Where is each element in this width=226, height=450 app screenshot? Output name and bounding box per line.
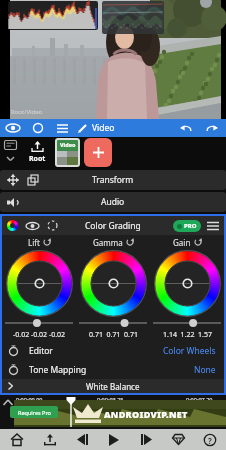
button[interactable] bbox=[76, 249, 150, 317]
button[interactable]: Editor bbox=[2, 341, 224, 360]
button[interactable] bbox=[66, 429, 98, 450]
button[interactable]: ? bbox=[194, 429, 226, 450]
staticText: -0.02 -0.02 -0.02 bbox=[13, 330, 66, 340]
staticText: PRO bbox=[184, 222, 197, 230]
staticText: ? bbox=[208, 435, 212, 446]
button[interactable]: Video bbox=[55, 138, 80, 167]
staticText: Root bbox=[29, 154, 46, 164]
button[interactable] bbox=[26, 119, 50, 137]
staticText: Tone Mapping bbox=[29, 364, 87, 376]
staticText: Color Grading bbox=[85, 220, 141, 232]
staticText: 0:00:03.25 bbox=[97, 396, 124, 403]
button[interactable]: Tone Mapping bbox=[2, 360, 224, 379]
staticText: White Balance bbox=[86, 381, 140, 392]
staticText: 0:00:00.00 bbox=[16, 396, 43, 403]
button[interactable] bbox=[2, 249, 76, 317]
button[interactable]: Requires Pro bbox=[10, 406, 58, 418]
button[interactable] bbox=[130, 429, 162, 450]
button[interactable]: Transform bbox=[0, 170, 226, 190]
button[interactable]: PRO bbox=[173, 220, 201, 232]
staticText: Gamma bbox=[93, 237, 123, 248]
staticText: Video bbox=[92, 122, 115, 134]
staticText: Video bbox=[60, 141, 76, 148]
button[interactable]: Video bbox=[74, 119, 119, 137]
button[interactable] bbox=[198, 119, 226, 137]
button[interactable] bbox=[84, 138, 112, 167]
button[interactable]: White Balance bbox=[2, 379, 224, 393]
button[interactable]: Root bbox=[22, 138, 52, 167]
button[interactable] bbox=[162, 429, 194, 450]
staticText: 0:00:07.20 bbox=[186, 396, 213, 403]
button[interactable] bbox=[50, 119, 74, 137]
button[interactable] bbox=[33, 429, 66, 450]
button[interactable]: Audio bbox=[0, 192, 226, 212]
button[interactable] bbox=[98, 429, 130, 450]
button[interactable] bbox=[172, 119, 198, 137]
staticText: 1.14 1.22 1.57 bbox=[163, 330, 212, 340]
staticText: Root/Video bbox=[11, 108, 43, 116]
staticText: Requires Pro bbox=[18, 409, 51, 416]
button[interactable] bbox=[0, 429, 33, 450]
staticText: Editor bbox=[29, 345, 53, 357]
staticText: ANDROIDVIP.NET bbox=[104, 408, 188, 420]
staticText: 0.71 0.71 0.71 bbox=[89, 330, 138, 340]
staticText: None bbox=[194, 364, 216, 376]
staticText: Gain bbox=[173, 237, 191, 248]
staticText: Audio bbox=[101, 196, 125, 208]
button[interactable]: Color Grading bbox=[2, 216, 224, 235]
staticText: Color Wheels bbox=[163, 345, 216, 357]
button[interactable] bbox=[150, 249, 224, 317]
staticText: Transform bbox=[92, 174, 134, 186]
button[interactable] bbox=[0, 119, 26, 137]
staticText: Lift bbox=[28, 237, 40, 248]
